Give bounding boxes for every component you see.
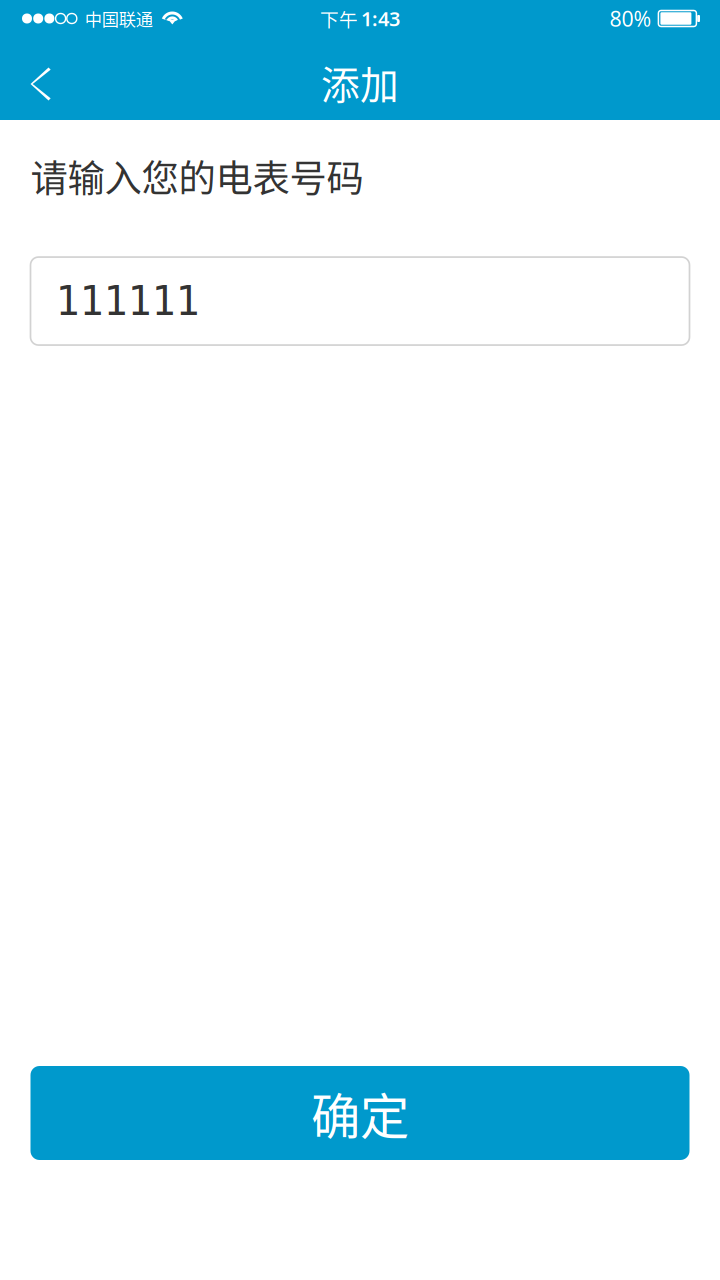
button[interactable]: Back [0,37,72,120]
staticText: 下午 [320,5,358,32]
staticText: 请输入您的电表号码 [30,149,363,203]
button[interactable]: 确定 [30,1066,689,1160]
staticText: 确定 [311,1077,409,1149]
button[interactable]: 111111 [30,257,689,345]
staticText: 中国联通 [85,6,153,31]
staticText: 1:43 [361,5,400,32]
staticText: 添加 [321,54,399,110]
staticText: 111111 [55,278,199,324]
staticText: 80% [609,4,651,33]
